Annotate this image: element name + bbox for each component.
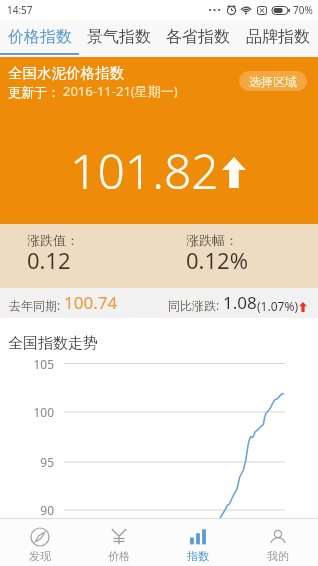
staticText: 我的: [267, 549, 289, 563]
staticText: 101.82: [70, 138, 219, 203]
staticText: 选择区域: [249, 74, 297, 89]
button[interactable]: 指数: [158, 519, 238, 566]
other: 指数: [188, 527, 208, 547]
staticText: 涨跌值：: [27, 232, 79, 248]
staticText: 去年同期:: [9, 297, 61, 313]
staticText: 全国水泥价格指数: [8, 64, 124, 82]
button[interactable]: 价格指数: [0, 20, 79, 57]
staticText: 95: [40, 454, 54, 470]
staticText: 同比涨跌:: [168, 297, 220, 313]
staticText: 90: [40, 502, 54, 518]
button[interactable]: 我的: [238, 519, 318, 566]
staticText: 0.12: [27, 245, 71, 275]
staticText: 品牌指数: [246, 27, 310, 47]
button[interactable]: 品牌指数: [238, 20, 318, 57]
button[interactable]: 选择区域: [239, 71, 307, 91]
other: 发现: [30, 527, 50, 547]
staticText: 更新于：: [8, 84, 60, 100]
staticText: 70%: [293, 3, 313, 17]
staticText: 105: [33, 356, 54, 372]
staticText: 100: [33, 404, 54, 420]
staticText: 全国指数走势: [8, 334, 98, 353]
staticText: 14:57: [7, 3, 33, 17]
button[interactable]: 发现: [0, 519, 79, 566]
staticText: (1.07%): [257, 298, 298, 314]
staticText: 2016-11-21(星期一): [63, 82, 178, 100]
staticText: 价格: [108, 549, 130, 563]
staticText: 价格指数: [8, 27, 72, 47]
other: 我的: [268, 527, 288, 547]
staticText: 1.08: [223, 291, 257, 314]
staticText: 指数: [187, 549, 209, 563]
staticText: 发现: [29, 549, 51, 563]
staticText: 100.74: [64, 291, 118, 314]
staticText: 涨跌幅：: [186, 232, 238, 248]
staticText: 0.12%: [186, 245, 248, 275]
button[interactable]: 各省指数: [158, 20, 238, 57]
staticText: 各省指数: [166, 27, 230, 47]
button[interactable]: 景气指数: [79, 20, 158, 57]
button[interactable]: 价格: [79, 519, 158, 566]
staticText: 景气指数: [87, 27, 151, 47]
other: 价格: [109, 527, 129, 547]
